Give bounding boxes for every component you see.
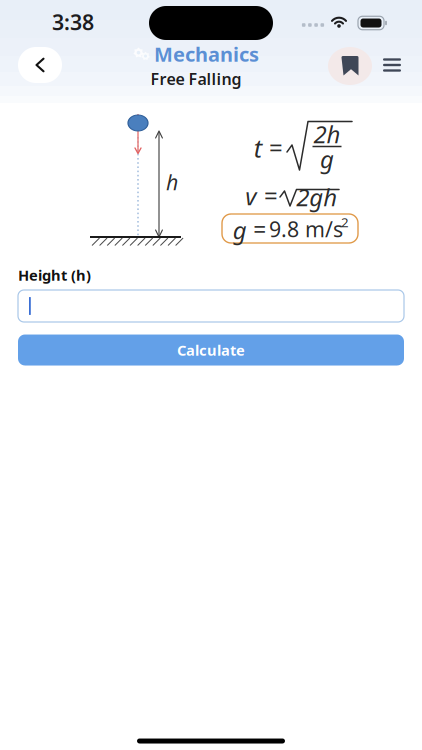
staticText: 2gh bbox=[296, 181, 337, 213]
staticText: t bbox=[254, 131, 262, 165]
staticText: h bbox=[166, 168, 178, 196]
staticText: Calculate bbox=[177, 340, 245, 360]
staticText: Height (h) bbox=[18, 265, 91, 285]
staticText: = bbox=[253, 214, 266, 244]
staticText: Mechanics bbox=[154, 41, 259, 67]
staticText: = bbox=[269, 131, 283, 163]
staticText: 2 bbox=[341, 213, 349, 231]
staticText: 9.8 m/s bbox=[269, 215, 343, 243]
staticText: v bbox=[245, 180, 256, 212]
staticText: g bbox=[320, 143, 334, 175]
button[interactable]: Bookmark bbox=[328, 46, 372, 86]
button[interactable]: Menu bbox=[376, 49, 408, 81]
staticText: = bbox=[264, 179, 278, 211]
staticText: g bbox=[233, 214, 247, 246]
staticText: 2h bbox=[313, 118, 340, 150]
button[interactable]: Calculate bbox=[18, 334, 404, 365]
button[interactable]: Back bbox=[17, 46, 63, 84]
staticText: Free Falling bbox=[150, 68, 241, 89]
staticText: 3:38 bbox=[52, 8, 94, 36]
